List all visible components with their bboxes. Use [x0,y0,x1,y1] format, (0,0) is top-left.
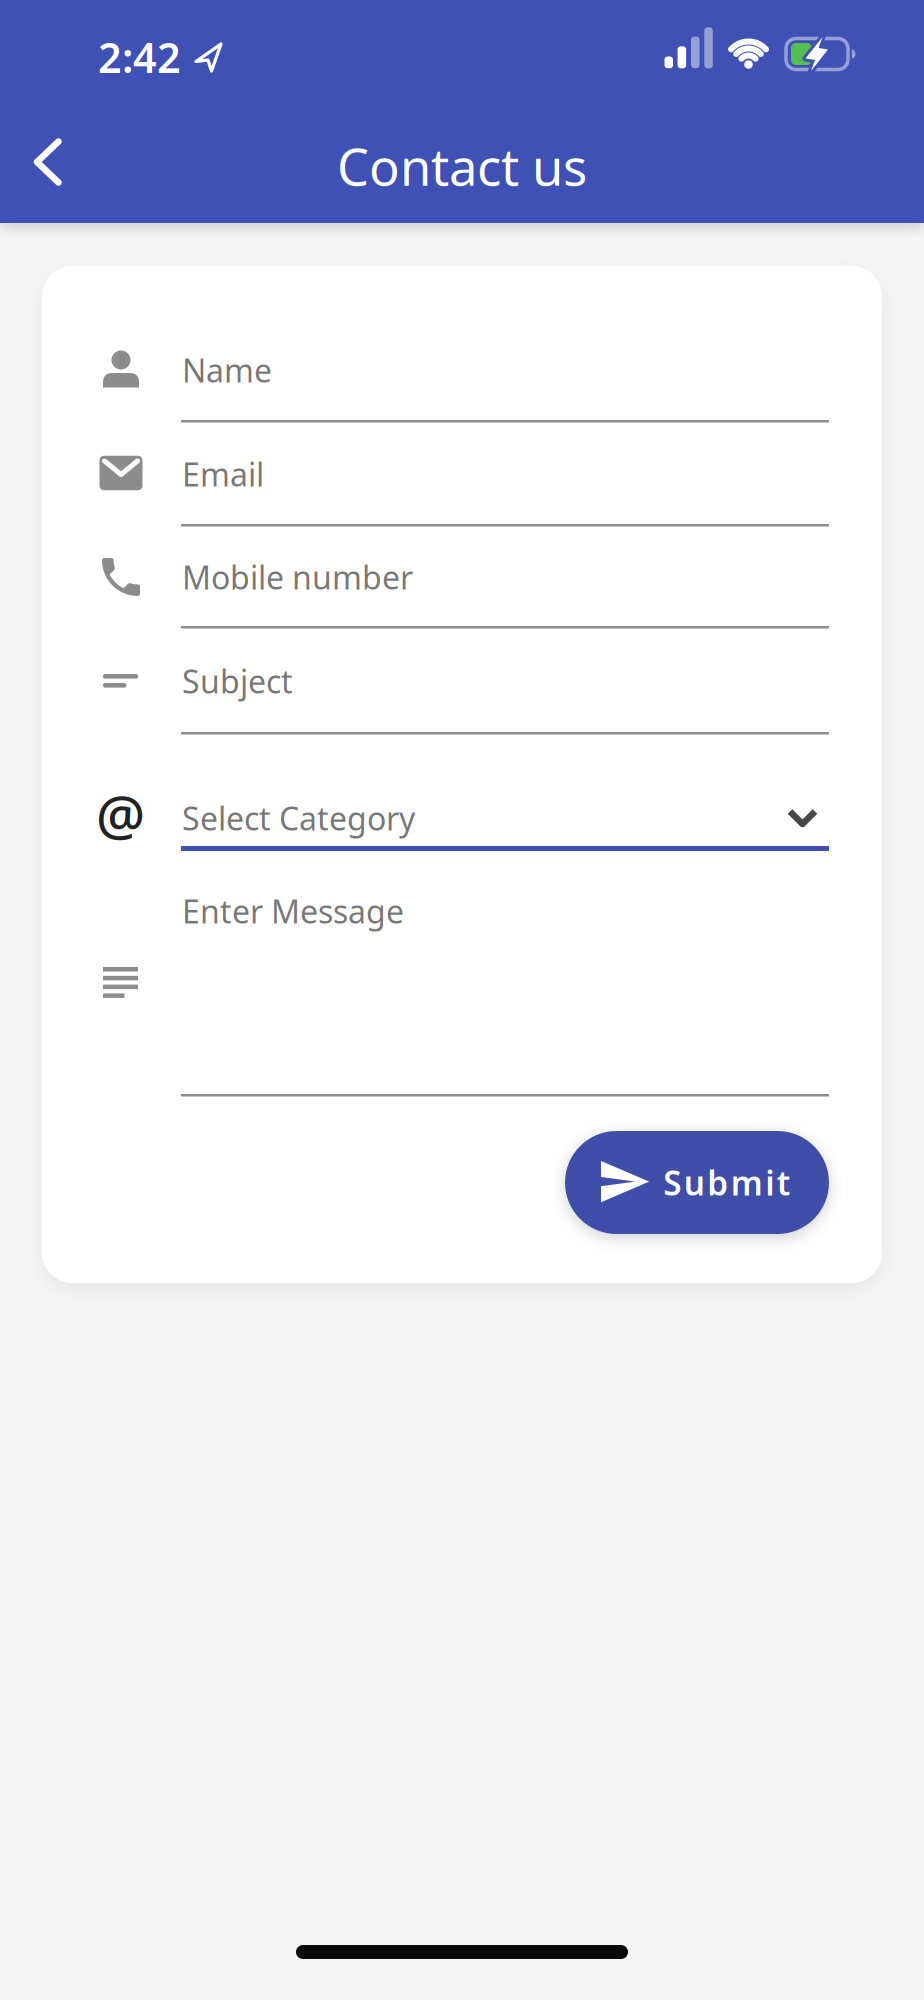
button[interactable]: Mobile number [95,552,830,632]
button[interactable]: Subject [95,656,830,736]
button[interactable]: Name [95,344,830,424]
button[interactable]: Submit [565,1131,829,1234]
staticText: Submit [663,1160,791,1205]
button[interactable]: Enter Message [95,884,830,1098]
button[interactable]: Email [95,448,830,528]
button[interactable] [13,126,83,196]
staticText: Name [182,349,272,391]
staticText: Enter Message [182,890,404,932]
button[interactable]: @ [95,780,830,852]
staticText: Select Category [182,797,415,839]
staticText: Contact us [337,132,587,200]
staticText: Subject [182,660,293,702]
staticText: Mobile number [182,556,413,598]
staticText: Email [182,453,264,495]
staticText: @ [96,778,145,850]
staticText: 2:42 [98,30,181,84]
